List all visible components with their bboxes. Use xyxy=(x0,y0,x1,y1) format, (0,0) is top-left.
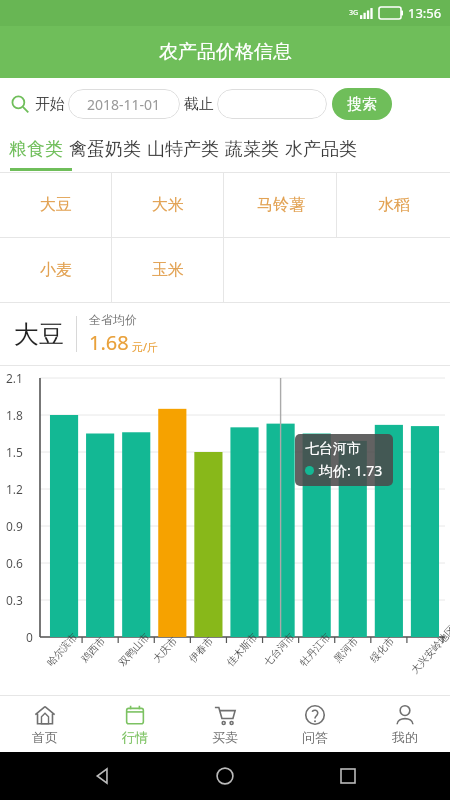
button[interactable]: 山特产类 xyxy=(144,130,222,168)
button[interactable]: 问答 xyxy=(270,696,360,752)
staticText: 开始 xyxy=(35,95,65,114)
button[interactable]: Home xyxy=(205,756,245,796)
staticText: 元/斤 xyxy=(132,339,159,354)
button[interactable]: 马铃薯 xyxy=(224,173,337,237)
button[interactable]: 行情 xyxy=(90,696,180,752)
button[interactable]: 小麦 xyxy=(0,238,112,302)
button[interactable]: 禽蛋奶类 xyxy=(66,130,144,168)
staticText: 玉米 xyxy=(152,260,184,280)
staticText: 大兴安岭地区 xyxy=(408,623,450,676)
staticText: 2.1 xyxy=(6,370,23,386)
staticText: 0 xyxy=(26,629,33,645)
staticText: 农产品价格信息 xyxy=(159,40,292,64)
staticText: 双鸭山市 xyxy=(116,630,152,669)
staticText: 大庆市 xyxy=(150,634,180,665)
staticText: 全省均价 xyxy=(89,312,137,327)
button[interactable]: 玉米 xyxy=(112,238,224,302)
staticText: 搜索 xyxy=(347,95,377,114)
staticText: 1.8 xyxy=(6,407,23,423)
button[interactable] xyxy=(217,89,327,119)
button[interactable]: 我的 xyxy=(360,696,450,752)
staticText: 买卖 xyxy=(212,729,238,745)
staticText: 哈尔滨市 xyxy=(44,630,80,669)
button[interactable]: Back xyxy=(83,756,123,796)
staticText: 大米 xyxy=(152,195,184,215)
staticText: 0.3 xyxy=(6,592,23,608)
staticText: 黑河市 xyxy=(331,634,361,665)
staticText: 大豆 xyxy=(40,195,72,215)
staticText: 佳木斯市 xyxy=(224,630,260,669)
button[interactable]: 粮食类 xyxy=(6,130,66,168)
staticText: 七台河市 xyxy=(305,440,361,458)
staticText: 水稻 xyxy=(378,195,410,215)
button[interactable]: Search xyxy=(8,92,32,116)
staticText: 问答 xyxy=(302,729,328,745)
button[interactable]: 大豆 xyxy=(0,173,112,237)
staticText: 水产品类 xyxy=(285,138,357,161)
button[interactable]: 水稻 xyxy=(337,173,450,237)
button[interactable]: 买卖 xyxy=(180,696,270,752)
staticText: 禽蛋奶类 xyxy=(69,138,141,161)
staticText: 鸡西市 xyxy=(78,634,108,665)
staticText: 0.6 xyxy=(6,555,23,571)
staticText: 绥化市 xyxy=(367,634,397,665)
button[interactable]: 水产品类 xyxy=(282,130,360,168)
staticText: 牡丹江市 xyxy=(297,630,333,669)
staticText: 1.2 xyxy=(6,481,23,497)
button[interactable]: 搜索 xyxy=(332,88,392,120)
staticText: 首页 xyxy=(32,729,58,745)
staticText: 3G xyxy=(349,8,359,18)
button[interactable]: 首页 xyxy=(0,696,90,752)
staticText: 粮食类 xyxy=(9,138,63,161)
staticText: 1.68 xyxy=(89,329,129,356)
button[interactable]: 蔬菜类 xyxy=(222,130,282,168)
staticText: 均价: 1.73 xyxy=(319,461,383,480)
button[interactable]: 2018-11-01 xyxy=(68,89,180,119)
staticText: 蔬菜类 xyxy=(225,138,279,161)
button[interactable]: 大米 xyxy=(112,173,224,237)
staticText: 小麦 xyxy=(40,260,72,280)
staticText: 伊春市 xyxy=(186,634,216,665)
staticText: 0.9 xyxy=(6,518,23,534)
staticText: 我的 xyxy=(392,729,418,745)
staticText: 截止 xyxy=(184,95,214,114)
staticText: 大豆 xyxy=(14,319,64,350)
staticText: 行情 xyxy=(122,729,148,745)
staticText: 马铃薯 xyxy=(257,195,305,215)
staticText: 13:56 xyxy=(408,4,442,22)
staticText: 七台河市 xyxy=(261,630,297,669)
button[interactable]: Recents xyxy=(328,756,368,796)
staticText: 山特产类 xyxy=(147,138,219,161)
staticText: 2018-11-01 xyxy=(87,95,161,114)
staticText: 1.5 xyxy=(6,444,23,460)
